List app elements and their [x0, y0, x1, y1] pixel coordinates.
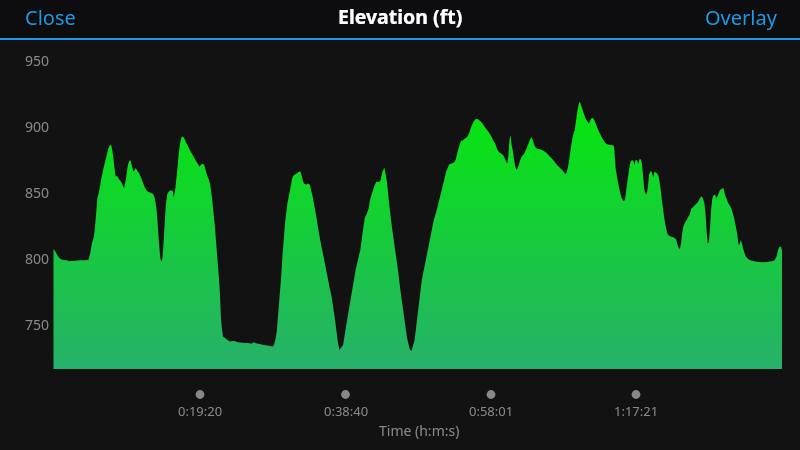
staticText: Time (h:m:s)	[379, 421, 460, 440]
staticText: 850	[25, 183, 50, 202]
staticText: Overlay	[705, 4, 777, 31]
staticText: 950	[25, 51, 50, 70]
button[interactable]: Close	[0, 4, 101, 34]
staticText: Close	[25, 4, 76, 31]
button[interactable]: Overlay	[680, 4, 800, 34]
staticText: 800	[25, 249, 50, 268]
staticText: 0:38:40	[324, 402, 369, 420]
staticText: 0:58:01	[469, 402, 514, 420]
staticText: 750	[25, 315, 50, 334]
staticText: 900	[25, 117, 50, 136]
staticText: Elevation (ft)	[338, 3, 463, 30]
staticText: 1:17:21	[614, 402, 659, 420]
staticText: 0:19:20	[178, 402, 223, 420]
